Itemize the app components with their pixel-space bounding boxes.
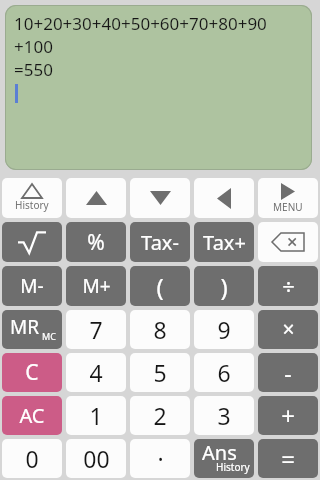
staticText: ·: [157, 443, 164, 474]
staticText: MC: [42, 330, 56, 342]
staticText: 5: [153, 357, 167, 388]
button[interactable]: Scroll down: [130, 178, 190, 218]
staticText: MR: [10, 314, 40, 340]
staticText: Tax+: [203, 229, 246, 256]
staticText: 2: [153, 400, 167, 431]
staticText: ×: [282, 315, 295, 344]
staticText: %: [87, 228, 105, 257]
button[interactable]: ·: [130, 439, 190, 478]
button[interactable]: 2: [130, 396, 190, 435]
staticText: AC: [19, 402, 45, 429]
button[interactable]: -: [258, 353, 318, 392]
button[interactable]: M-: [2, 266, 62, 306]
button[interactable]: 9: [194, 310, 254, 349]
button[interactable]: 3: [194, 396, 254, 435]
button[interactable]: M+: [66, 266, 126, 306]
button[interactable]: Ans: [194, 439, 254, 478]
button[interactable]: 1: [66, 396, 126, 435]
staticText: M+: [82, 273, 111, 299]
button[interactable]: 00: [66, 439, 126, 478]
staticText: Tax-: [141, 229, 179, 256]
staticText: 0: [25, 443, 39, 474]
staticText: ÷: [282, 271, 295, 301]
staticText: 4: [89, 357, 103, 388]
button[interactable]: MR: [2, 310, 62, 349]
button[interactable]: Tax+: [194, 222, 254, 262]
staticText: C: [25, 358, 39, 387]
staticText: M-: [20, 273, 44, 299]
staticText: Ans: [202, 439, 237, 466]
button[interactable]: 7: [66, 310, 126, 349]
button[interactable]: 8: [130, 310, 190, 349]
button[interactable]: ×: [258, 310, 318, 349]
button[interactable]: =: [258, 439, 318, 478]
button[interactable]: %: [66, 222, 126, 262]
staticText: History: [15, 198, 49, 212]
staticText: 00: [83, 443, 110, 474]
button[interactable]: Backspace: [258, 222, 318, 262]
button[interactable]: AC: [2, 396, 62, 435]
staticText: =: [281, 442, 295, 475]
staticText: -: [284, 357, 292, 388]
button[interactable]: Menu: [258, 178, 318, 218]
button[interactable]: ): [194, 266, 254, 306]
button[interactable]: Scroll up: [66, 178, 126, 218]
staticText: MENU: [273, 200, 303, 214]
staticText: +100: [14, 35, 53, 58]
staticText: 1: [89, 400, 103, 431]
staticText: ): [220, 270, 228, 303]
staticText: 9: [217, 314, 231, 345]
staticText: 6: [217, 357, 231, 388]
button[interactable]: 0: [2, 439, 62, 478]
button[interactable]: History: [2, 178, 62, 218]
staticText: +: [281, 399, 295, 432]
staticText: 3: [217, 400, 231, 431]
staticText: 7: [89, 314, 103, 345]
staticText: (: [156, 270, 164, 303]
button[interactable]: (: [130, 266, 190, 306]
button[interactable]: 5: [130, 353, 190, 392]
button[interactable]: 6: [194, 353, 254, 392]
button[interactable]: C: [2, 353, 62, 392]
button[interactable]: Move left: [194, 178, 254, 218]
staticText: 8: [153, 314, 167, 345]
staticText: 10+20+30+40+50+60+70+80+90: [14, 12, 267, 35]
button[interactable]: ÷: [258, 266, 318, 306]
button[interactable]: Square root: [2, 222, 62, 262]
button[interactable]: +: [258, 396, 318, 435]
staticText: History: [216, 460, 250, 474]
button[interactable]: Tax-: [130, 222, 190, 262]
staticText: =550: [14, 58, 53, 81]
button[interactable]: 4: [66, 353, 126, 392]
